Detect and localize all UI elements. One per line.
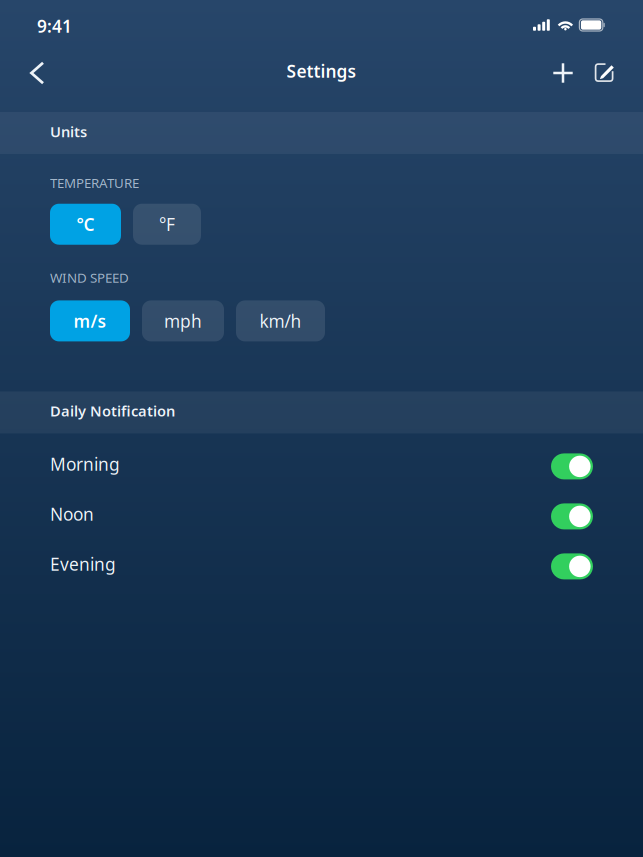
staticText: WIND SPEED: [50, 269, 129, 286]
staticText: m/s: [73, 309, 106, 332]
staticText: km/h: [259, 309, 301, 332]
button[interactable]: Edit: [584, 50, 626, 96]
button[interactable]: Evening: [0, 541, 643, 591]
staticText: mph: [164, 309, 202, 332]
button[interactable]: km/h: [236, 300, 325, 341]
staticText: Daily Notification: [50, 401, 175, 421]
button[interactable]: °C: [50, 204, 121, 245]
staticText: Units: [50, 122, 87, 141]
button[interactable]: Add: [542, 50, 584, 96]
staticText: 9:41: [37, 14, 72, 37]
staticText: TEMPERATURE: [50, 174, 139, 192]
button[interactable]: Noon: [0, 491, 643, 541]
staticText: Noon: [50, 502, 94, 525]
staticText: Evening: [50, 552, 116, 575]
staticText: °C: [76, 213, 94, 236]
staticText: Settings: [286, 59, 356, 82]
button[interactable]: °F: [133, 204, 201, 245]
button[interactable]: Morning: [0, 441, 643, 491]
staticText: Morning: [50, 452, 120, 475]
button[interactable]: mph: [142, 300, 224, 341]
staticText: °F: [159, 213, 175, 236]
button[interactable]: Back: [14, 50, 60, 96]
button[interactable]: m/s: [50, 300, 130, 341]
